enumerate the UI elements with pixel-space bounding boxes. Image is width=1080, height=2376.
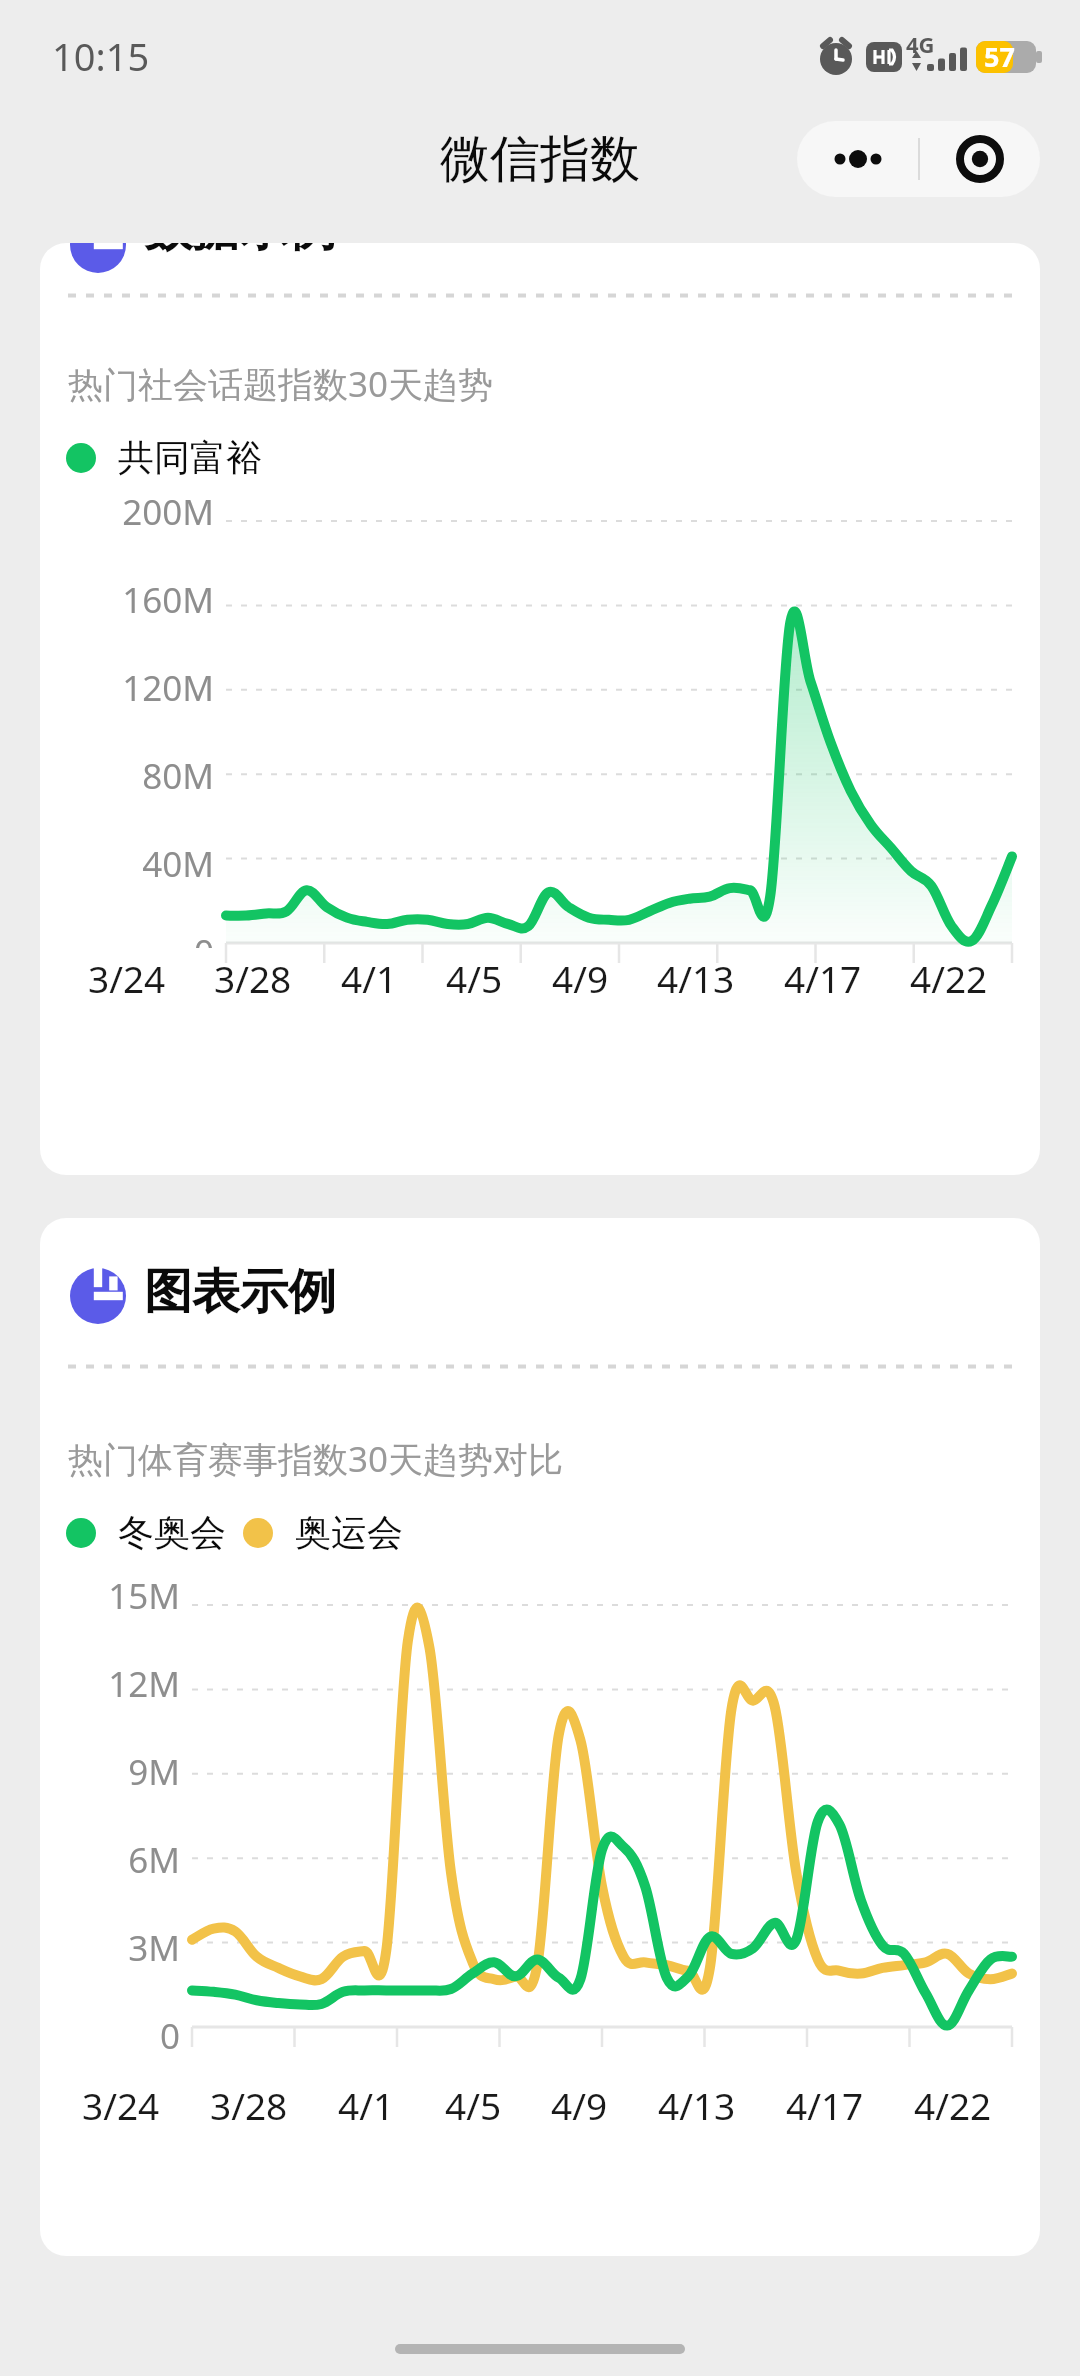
staticText: 120M: [82, 664, 214, 712]
staticText: 热门体育赛事指数30天趋势对比: [68, 1435, 564, 1483]
button[interactable]: More options: [797, 121, 1040, 197]
staticText: 40M: [82, 840, 214, 888]
staticText: 0: [70, 2012, 180, 2060]
button[interactable]: More options: [797, 121, 918, 197]
staticText: 奥运会: [295, 1510, 403, 1555]
staticText: 3/24: [82, 2080, 160, 2130]
staticText: 12M: [70, 1660, 180, 1708]
staticText: 4/17: [784, 953, 862, 1003]
staticText: 4/13: [657, 953, 735, 1003]
staticText: 160M: [82, 576, 214, 624]
staticText: 3/28: [210, 2080, 288, 2130]
staticText: 共同富裕: [118, 435, 262, 480]
staticText: 微信指数: [0, 128, 1080, 191]
staticText: 4/22: [914, 2080, 992, 2130]
button[interactable]: 共同富裕: [66, 435, 262, 480]
staticText: 9M: [70, 1748, 180, 1796]
staticText: 3/24: [88, 953, 166, 1003]
staticText: 57: [984, 38, 1015, 75]
button[interactable]: 热门社会话题指数30天趋势: [40, 243, 1040, 1175]
button[interactable]: 冬奥会: [66, 1510, 226, 1555]
staticText: 数据示例: [144, 243, 336, 259]
staticText: 4G: [906, 29, 935, 59]
staticText: 4/1: [341, 953, 398, 1003]
staticText: 4/13: [658, 2080, 736, 2130]
staticText: 图表示例: [144, 1262, 336, 1322]
staticText: 4/9: [552, 953, 609, 1003]
staticText: 0: [82, 928, 214, 948]
staticText: 4/5: [445, 2080, 502, 2130]
staticText: 4/5: [446, 953, 503, 1003]
staticText: 3M: [70, 1924, 180, 1972]
staticText: 6M: [70, 1836, 180, 1884]
staticText: 4/17: [786, 2080, 864, 2130]
button[interactable]: 图表示例: [40, 1218, 1040, 2256]
staticText: 4/22: [910, 953, 988, 1003]
staticText: 10:15: [52, 30, 150, 82]
staticText: 4/1: [338, 2080, 395, 2130]
button[interactable]: 奥运会: [243, 1510, 403, 1555]
staticText: 冬奥会: [118, 1510, 226, 1555]
staticText: 80M: [82, 752, 214, 800]
staticText: 4/9: [551, 2080, 608, 2130]
staticText: 15M: [70, 1572, 180, 1620]
button[interactable]: Close mini program: [920, 121, 1040, 197]
staticText: 3/28: [214, 953, 292, 1003]
staticText: 200M: [82, 488, 214, 536]
staticText: 热门社会话题指数30天趋势: [68, 360, 494, 408]
